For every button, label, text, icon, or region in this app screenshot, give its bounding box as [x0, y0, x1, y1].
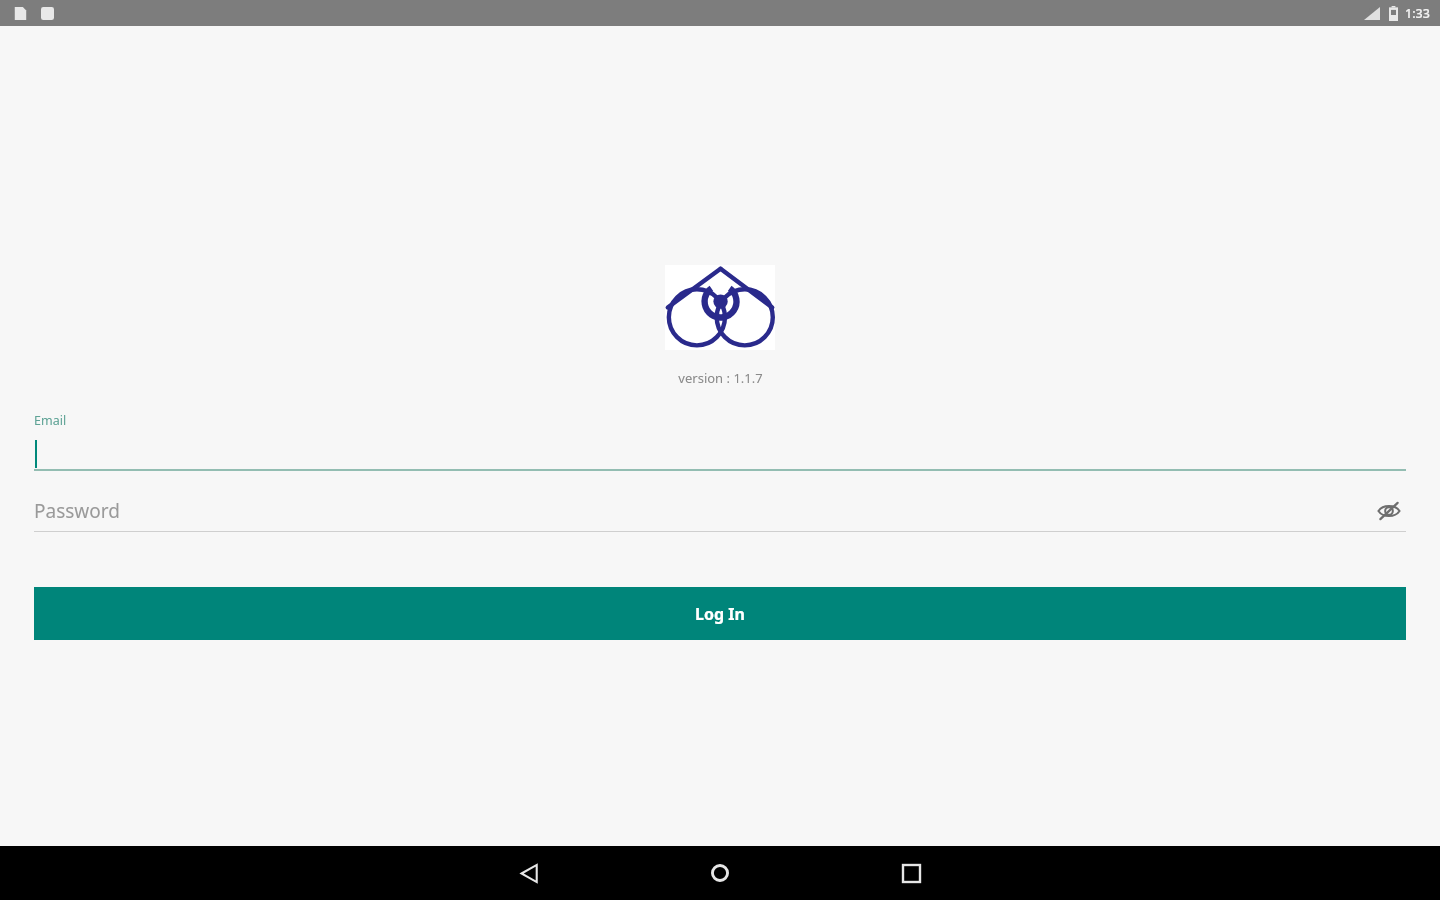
button[interactable]: Recents — [887, 849, 935, 897]
button[interactable]: Home — [696, 849, 744, 897]
button[interactable]: Back — [505, 849, 553, 897]
staticText: version : 1.1.7 — [678, 369, 763, 387]
staticText: 1:33 — [1405, 5, 1430, 22]
staticText: Password — [34, 498, 120, 524]
button[interactable]: Log In — [34, 587, 1406, 640]
button[interactable]: Email — [34, 412, 1406, 471]
button[interactable]: Password — [34, 494, 1406, 532]
staticText: Log In — [695, 603, 745, 625]
staticText: Email — [34, 412, 67, 429]
button[interactable]: Show password — [1372, 494, 1406, 527]
